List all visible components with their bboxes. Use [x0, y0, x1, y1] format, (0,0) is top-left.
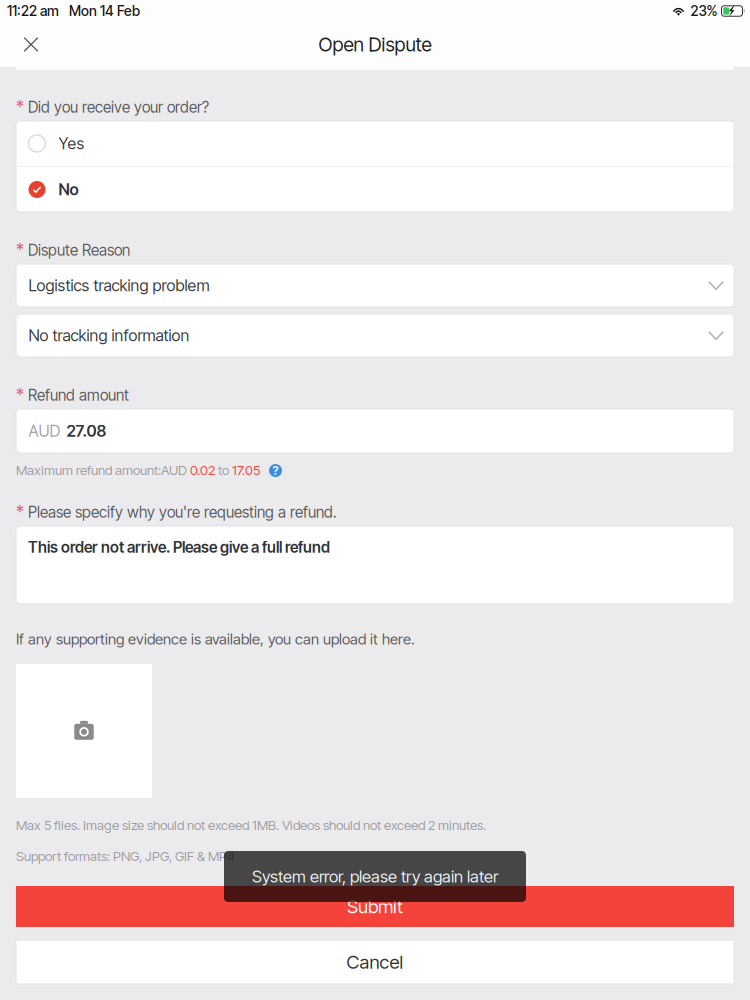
staticText: Refund amount — [28, 386, 129, 404]
staticText: ? — [272, 463, 278, 478]
staticText: Logistics tracking problem — [28, 276, 209, 295]
staticText: Yes — [58, 134, 84, 153]
staticText: Please specify why you're requesting a r… — [28, 503, 337, 521]
button[interactable]: Close — [8, 22, 54, 67]
button[interactable]: Logistics tracking problem — [16, 264, 734, 307]
staticText: * — [16, 96, 24, 117]
staticText: 27.08 — [66, 421, 106, 441]
staticText: 0.02 — [190, 462, 215, 478]
staticText: Max 5 files. Image size should not excee… — [16, 817, 486, 833]
staticText: Did you receive your order? — [28, 98, 209, 116]
staticText: System error, please try again later — [252, 866, 498, 887]
staticText: Dispute Reason — [28, 241, 130, 259]
staticText: This order not arrive. Please give a ful… — [28, 538, 330, 557]
staticText: * — [16, 239, 24, 260]
staticText: * — [16, 501, 24, 522]
staticText: Support formats: PNG, JPG, GIF & MP4 — [16, 848, 235, 864]
button[interactable]: Upload photo — [16, 664, 152, 798]
button[interactable]: Yes — [16, 121, 734, 166]
button[interactable]: Submit — [16, 886, 734, 927]
staticText: Mon 14 Feb — [69, 2, 140, 19]
staticText: Submit — [347, 895, 403, 918]
staticText: 11:22 am — [7, 2, 59, 19]
staticText: No tracking information — [28, 326, 189, 345]
staticText: Cancel — [346, 951, 403, 973]
staticText: AUD — [28, 421, 60, 441]
staticText: 23% — [690, 2, 717, 19]
staticText: * — [16, 384, 24, 405]
staticText: 17.05 — [232, 462, 260, 478]
staticText: to — [215, 462, 232, 478]
button[interactable]: No tracking information — [16, 314, 734, 357]
staticText: If any supporting evidence is available,… — [16, 630, 415, 648]
staticText: Open Dispute — [318, 33, 431, 56]
button[interactable]: Cancel — [16, 940, 734, 984]
staticText: No — [58, 180, 78, 199]
staticText: Maximum refund amount:AUD — [16, 462, 190, 478]
button[interactable]: No — [16, 167, 734, 212]
